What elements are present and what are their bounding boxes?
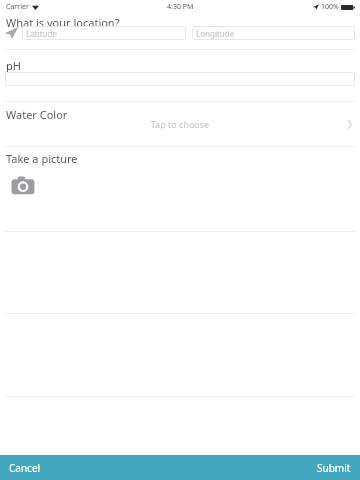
button[interactable] bbox=[5, 72, 355, 86]
button[interactable]: Submit bbox=[312, 457, 356, 479]
staticText: 4:30 PM bbox=[167, 2, 194, 12]
staticText: Cancel bbox=[9, 461, 41, 475]
staticText: Carrier bbox=[6, 2, 29, 12]
button[interactable]: Use current location bbox=[2, 25, 20, 41]
staticText: Tap to choose bbox=[0, 118, 360, 130]
staticText: Longitude bbox=[196, 28, 235, 39]
button[interactable]: Tap to choose bbox=[0, 116, 360, 132]
button[interactable]: Take a picture bbox=[10, 174, 36, 198]
button[interactable]: Cancel bbox=[4, 457, 46, 479]
button[interactable]: Latitude bbox=[22, 26, 186, 40]
button[interactable]: Longitude bbox=[192, 26, 355, 40]
staticText: Latitude bbox=[26, 28, 57, 39]
staticText: pH bbox=[6, 58, 21, 73]
staticText: Water Color bbox=[6, 107, 68, 122]
staticText: What is your location? bbox=[6, 15, 120, 30]
staticText: Submit bbox=[317, 461, 351, 475]
staticText: Take a picture bbox=[6, 151, 78, 166]
staticText: 100% bbox=[321, 2, 339, 12]
